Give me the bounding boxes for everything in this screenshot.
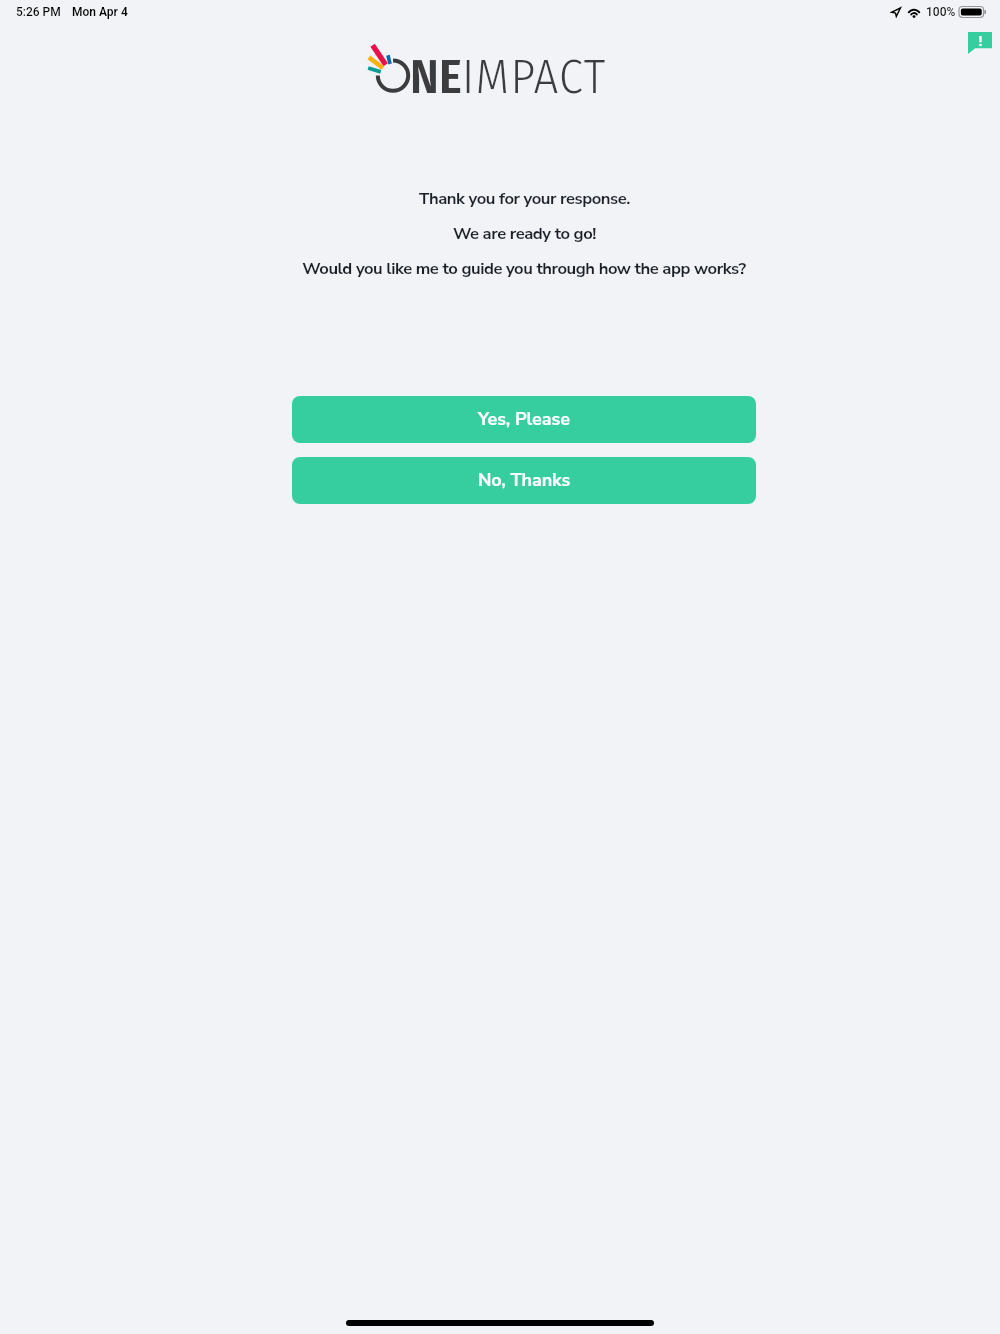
staticText: We are ready to go! [453,222,596,245]
button[interactable]: Yes, Please [292,396,756,443]
staticText: 100% [926,5,956,19]
staticText: No, Thanks [478,468,571,493]
staticText: 5:26 PM [16,5,61,19]
staticText: Would you like me to guide you through h… [302,257,746,280]
button[interactable]: Help [968,32,992,54]
staticText: Thank you for your response. [419,187,630,210]
staticText: NE [410,48,462,106]
staticText: Yes, Please [478,407,570,432]
button[interactable]: No, Thanks [292,457,756,504]
staticText: IMPACT [462,48,607,106]
staticText: Mon Apr 4 [72,5,128,19]
